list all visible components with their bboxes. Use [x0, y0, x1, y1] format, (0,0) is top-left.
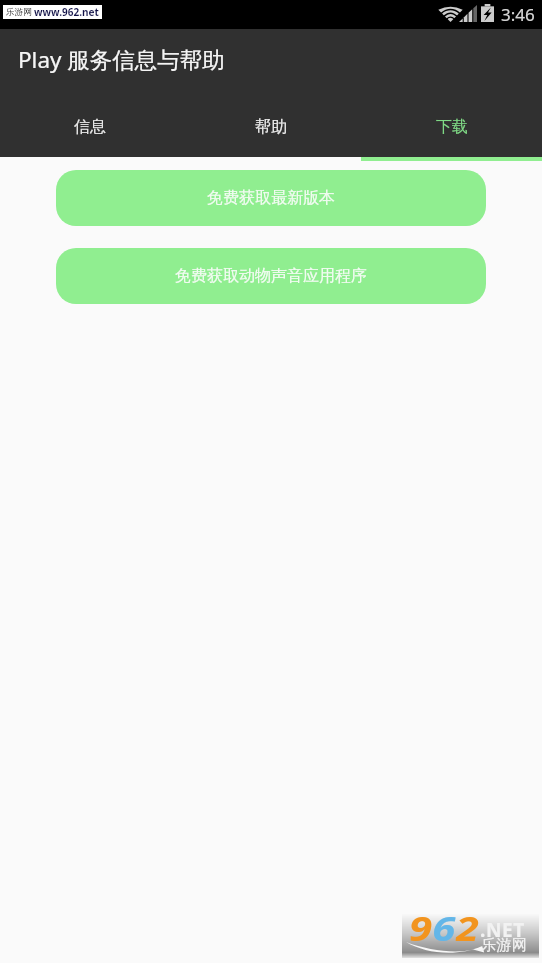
staticText: 2: [456, 905, 479, 950]
staticText: 免费获取最新版本: [207, 188, 335, 208]
staticText: Play 服务信息与帮助: [18, 44, 225, 75]
button[interactable]: 免费获取动物声音应用程序: [56, 248, 486, 304]
button[interactable]: 下载: [361, 96, 542, 161]
staticText: 下载: [436, 117, 468, 137]
staticText: 9: [409, 905, 432, 950]
staticText: 6: [432, 905, 456, 950]
button[interactable]: 免费获取最新版本: [56, 170, 486, 226]
staticText: .NET: [480, 917, 525, 943]
button[interactable]: 信息: [0, 96, 180, 161]
staticText: 乐游网: [6, 7, 32, 18]
staticText: 3:46: [501, 3, 535, 26]
button[interactable]: 帮助: [180, 96, 361, 161]
other: Mobile signal strength: [459, 5, 477, 22]
other: Battery charging: [481, 4, 494, 22]
staticText: www.962.net: [34, 5, 99, 19]
staticText: 乐游网: [481, 936, 528, 955]
staticText: 帮助: [255, 117, 287, 137]
staticText: 信息: [74, 117, 106, 137]
staticText: 免费获取动物声音应用程序: [175, 266, 367, 286]
other: Wi-Fi signal: [439, 5, 462, 22]
